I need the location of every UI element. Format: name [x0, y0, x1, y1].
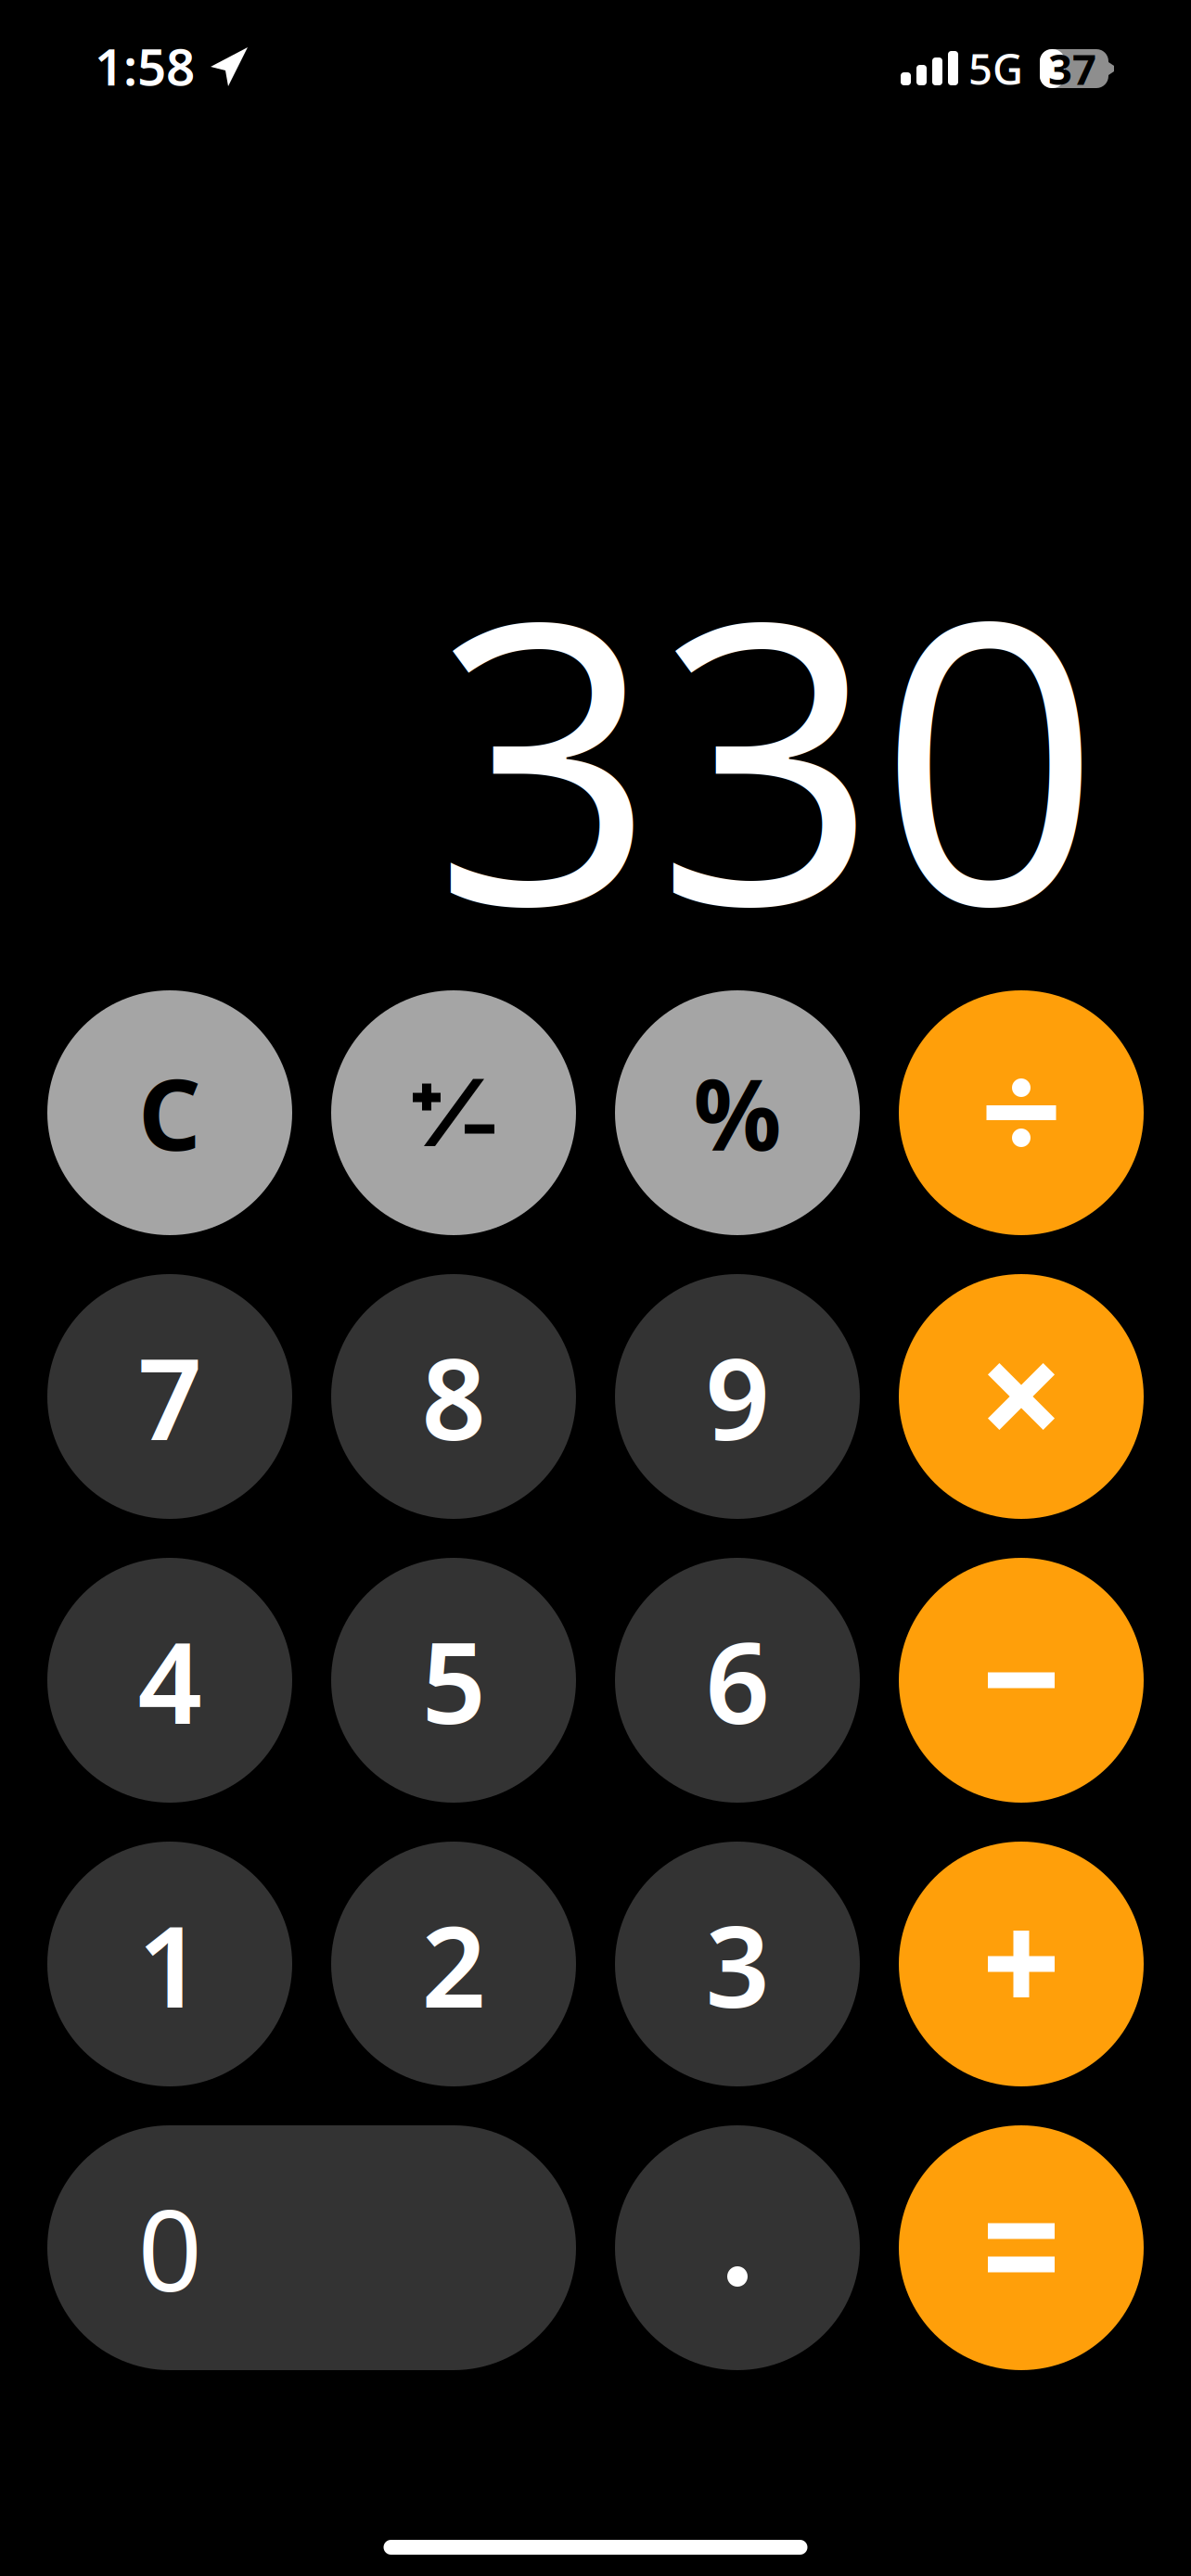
button[interactable]: Equals	[899, 2125, 1144, 2370]
staticText: 0	[138, 2173, 202, 2322]
staticText: %	[693, 1046, 781, 1179]
staticText: 1:58	[95, 32, 195, 99]
staticText: 5	[422, 1604, 486, 1757]
button[interactable]: 2	[331, 1842, 576, 2086]
staticText: 4	[138, 1604, 202, 1757]
button[interactable]: 7	[47, 1274, 292, 1519]
button[interactable]: 6	[615, 1558, 860, 1803]
staticText: 7	[138, 1320, 202, 1473]
button[interactable]: Plus	[899, 1842, 1144, 2086]
staticText: C	[138, 1046, 201, 1179]
staticText: 37	[1048, 41, 1096, 97]
staticText: 1	[138, 1887, 202, 2041]
staticText: 6	[705, 1604, 769, 1757]
button[interactable]: Divide	[899, 990, 1144, 1235]
button[interactable]: 8	[331, 1274, 576, 1519]
staticText: 330	[433, 488, 1101, 1018]
button[interactable]: Minus	[899, 1558, 1144, 1803]
button[interactable]: 3	[615, 1842, 860, 2086]
button[interactable]: 0	[47, 2125, 576, 2370]
button[interactable]: Multiply	[899, 1274, 1144, 1519]
staticText: 3	[705, 1887, 769, 2041]
staticText: 2	[422, 1887, 486, 2041]
button[interactable]: Toggle sign	[331, 990, 576, 1235]
button[interactable]: 9	[615, 1274, 860, 1519]
button[interactable]: C	[47, 990, 292, 1235]
staticText: 5G	[968, 41, 1023, 97]
button[interactable]: Decimal point	[615, 2125, 860, 2370]
button[interactable]: 5	[331, 1558, 576, 1803]
button[interactable]: 4	[47, 1558, 292, 1803]
staticText: 9	[705, 1320, 769, 1473]
staticText: 8	[422, 1320, 486, 1473]
button[interactable]: %	[615, 990, 860, 1235]
button[interactable]: 1	[47, 1842, 292, 2086]
